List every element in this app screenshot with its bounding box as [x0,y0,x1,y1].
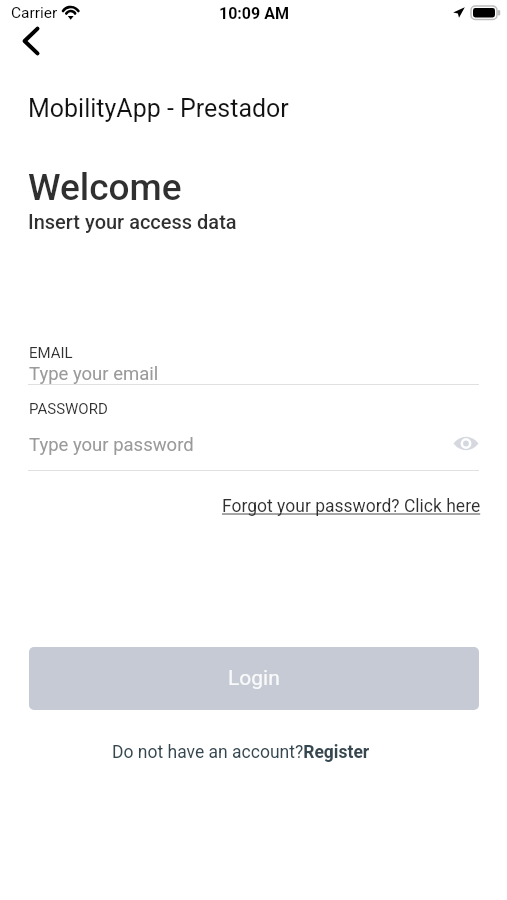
button[interactable]: Login [29,647,479,710]
staticText: Do not have an account?Register [112,742,370,763]
button[interactable]: Show password [452,429,479,457]
staticText: Welcome [28,166,182,209]
staticText: Login [228,666,280,691]
button[interactable]: Do not have an account?Register [112,742,370,763]
button[interactable]: Forgot your password? Click here [222,496,481,517]
staticText: Carrier [11,4,58,22]
staticText: EMAIL [29,344,73,362]
staticText: Insert your access data [28,210,237,233]
staticText: Type your email [29,363,159,385]
staticText: PASSWORD [29,400,108,418]
staticText: 10:09 AM [219,4,289,23]
staticText: MobilityApp - Prestador [28,94,289,123]
button[interactable]: Back [10,22,52,64]
staticText: Type your password [29,434,194,456]
